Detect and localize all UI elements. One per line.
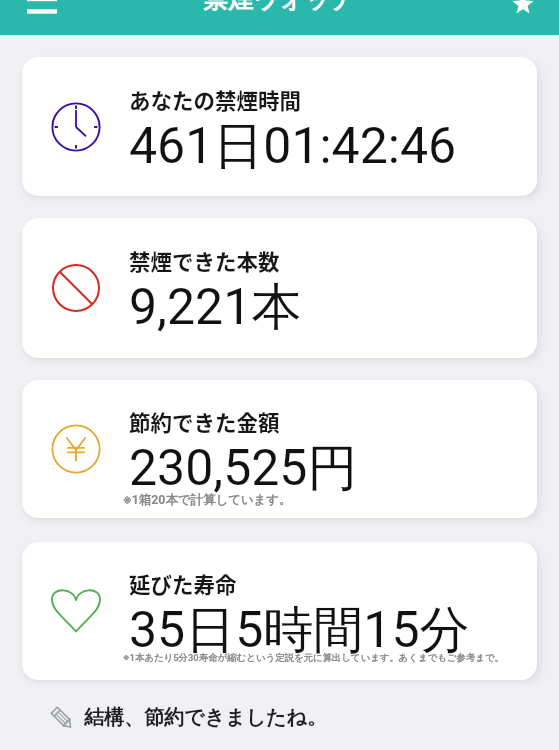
- staticText: 230,525円: [129, 437, 358, 500]
- staticText: あなたの禁煙時間: [129, 84, 302, 115]
- staticText: ※1本あたり5分30寿命が縮むという定説を元に算出しています。あくまでもご参考ま…: [123, 652, 504, 664]
- button[interactable]: 節約できた金額: [22, 380, 537, 518]
- button[interactable]: Favourite: [495, 0, 551, 8]
- button[interactable]: 延びた寿命: [22, 542, 537, 680]
- staticText: 461日01:42:46: [129, 115, 457, 178]
- button[interactable]: 結構、節約できましたね。: [50, 703, 327, 731]
- staticText: 禁煙できた本数: [129, 245, 280, 276]
- staticText: 結構、節約できましたね。: [84, 705, 327, 730]
- staticText: 延びた寿命: [129, 568, 237, 599]
- staticText: 禁煙ウォッチ: [203, 0, 356, 15]
- staticText: 35日5時間15分: [129, 599, 470, 662]
- button[interactable]: あなたの禁煙時間: [22, 57, 537, 196]
- staticText: ※1箱20本で計算しています。: [123, 492, 292, 508]
- staticText: 9,221本: [129, 276, 302, 339]
- staticText: 節約できた金額: [129, 406, 280, 437]
- button[interactable]: Navigation menu: [14, 0, 70, 6]
- button[interactable]: 禁煙できた本数: [22, 218, 537, 358]
